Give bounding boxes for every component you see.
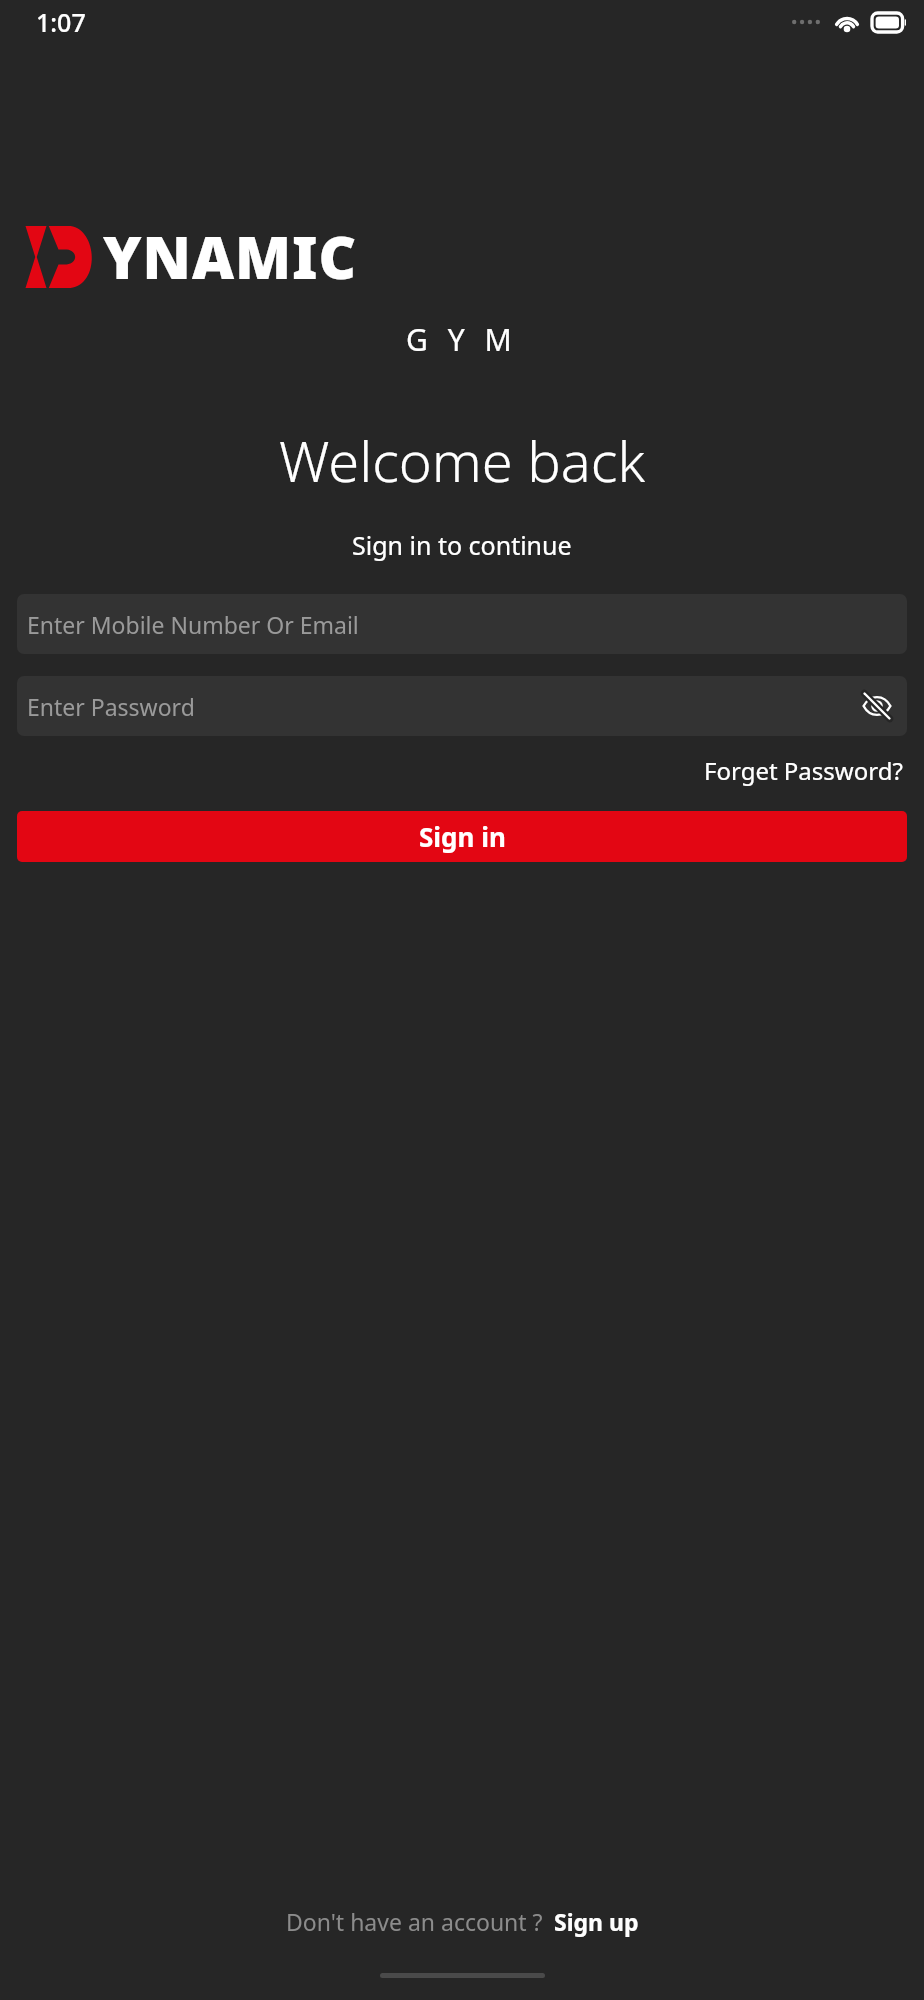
staticText: Sign up: [554, 1906, 639, 1937]
button[interactable]: Sign in: [17, 811, 907, 862]
staticText: Sign in: [419, 819, 506, 854]
staticText: YNAMIC: [103, 217, 358, 296]
staticText: Don't have an account ?: [286, 1906, 543, 1937]
staticText: Sign in to continue: [352, 528, 572, 562]
button[interactable]: Enter Password: [17, 676, 907, 736]
button[interactable]: Show password: [847, 676, 907, 736]
button[interactable]: Forget Password?: [700, 750, 907, 791]
staticText: Enter Mobile Number Or Email: [27, 609, 359, 640]
button[interactable]: Enter Mobile Number Or Email: [17, 594, 907, 654]
staticText: Enter Password: [27, 691, 195, 722]
button[interactable]: Sign up: [554, 1906, 639, 1937]
staticText: Welcome back: [279, 422, 646, 498]
staticText: Forget Password?: [704, 754, 903, 787]
staticText: 1:07: [36, 5, 86, 39]
staticText: G Y M: [406, 319, 518, 360]
